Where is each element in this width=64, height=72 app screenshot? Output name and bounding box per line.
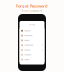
button[interactable] (19, 48, 44, 52)
button[interactable] (19, 43, 44, 48)
staticText: Forgot Password (16, 3, 48, 8)
button[interactable] (19, 38, 44, 43)
button[interactable] (19, 52, 44, 57)
staticText: Reset password (21, 9, 42, 13)
staticText: Settings (28, 24, 35, 26)
button[interactable] (19, 57, 44, 62)
button[interactable] (19, 28, 44, 33)
button[interactable] (19, 33, 44, 38)
